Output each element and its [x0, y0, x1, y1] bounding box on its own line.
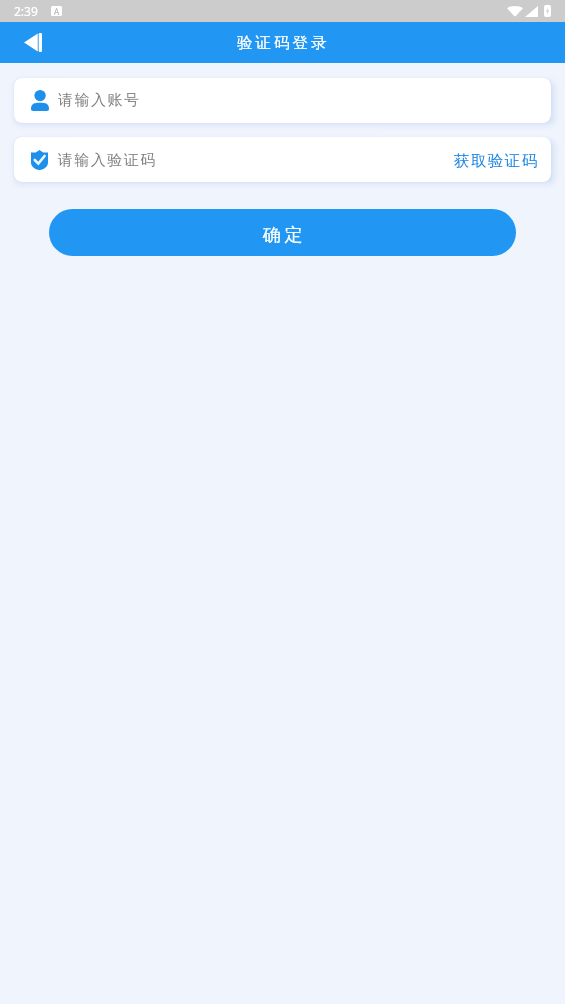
button[interactable]: 请输入验证码 [14, 137, 551, 182]
staticText: 获取验证码 [453, 151, 538, 171]
staticText: 请输入验证码 [57, 151, 156, 170]
staticText: 确定 [261, 224, 304, 247]
staticText: 请输入账号 [58, 91, 141, 110]
staticText: 验证码登录 [237, 33, 330, 53]
staticText: A [54, 6, 60, 16]
staticText: 2:39 [14, 3, 38, 19]
button[interactable]: Back [20, 29, 46, 55]
button[interactable]: 请输入账号 [14, 78, 551, 123]
button[interactable]: 确定 [49, 209, 516, 256]
button[interactable]: 获取验证码 [453, 144, 538, 176]
